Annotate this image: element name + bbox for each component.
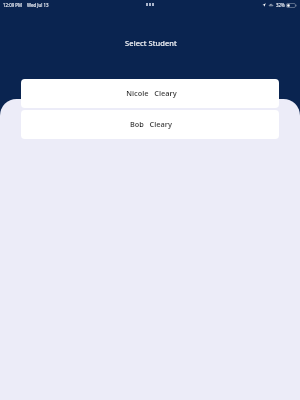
other: Wi-Fi signal (269, 3, 273, 7)
staticText: Select Student (1, 38, 300, 48)
staticText: Bob Cleary (130, 119, 172, 129)
staticText: 32% (276, 2, 285, 8)
button[interactable]: Bob Cleary (21, 110, 279, 139)
other: Battery 32 percent (286, 3, 297, 8)
button[interactable]: Nicole Cleary (21, 79, 279, 108)
staticText: Nicole Cleary (126, 88, 177, 98)
staticText: 12:09 PM (3, 2, 23, 8)
other: Location services active (262, 3, 266, 7)
staticText: Wed Jul 13 (27, 2, 49, 8)
